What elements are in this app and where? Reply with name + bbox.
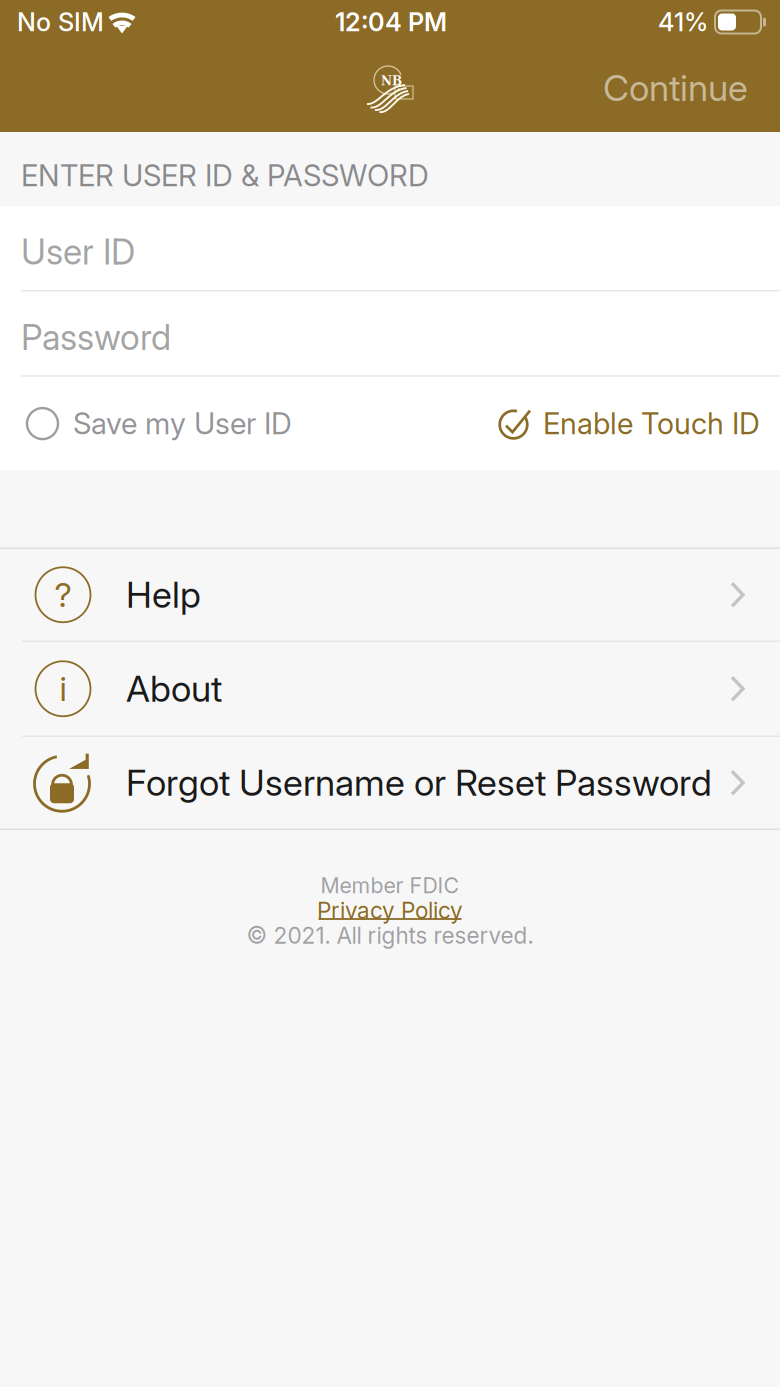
button[interactable]: Enable Touch ID [498,392,760,455]
staticText: NB [381,74,402,88]
button[interactable]: ? [0,549,780,641]
staticText: User ID [21,231,135,273]
staticText: 12:04 PM [335,7,447,37]
button[interactable]: Privacy Policy [317,898,463,923]
button[interactable]: Continue [581,50,770,126]
staticText: Forgot Username or Reset Password [126,761,712,805]
staticText: © 2021. All rights reserved. [246,922,533,949]
staticText: Member FDIC [320,872,459,898]
staticText: Password [21,316,171,358]
button[interactable]: Password [0,291,780,375]
staticText: 41% [658,7,708,37]
staticText: Continue [603,66,748,110]
button[interactable]: User ID [0,206,780,290]
staticText: ENTER USER ID & PASSWORD [21,158,429,193]
button[interactable]: i [0,642,780,736]
staticText: Help [126,573,201,617]
staticText: Enable Touch ID [543,406,760,441]
staticText: i [59,669,66,709]
staticText: Save my User ID [73,406,292,441]
staticText: ? [54,575,71,615]
staticText: About [126,667,222,711]
staticText: No SIM [17,7,104,37]
staticText: Privacy Policy [317,897,463,924]
button[interactable]: Forgot Username or Reset Password [0,737,780,829]
button[interactable]: Save my User ID [27,392,292,455]
